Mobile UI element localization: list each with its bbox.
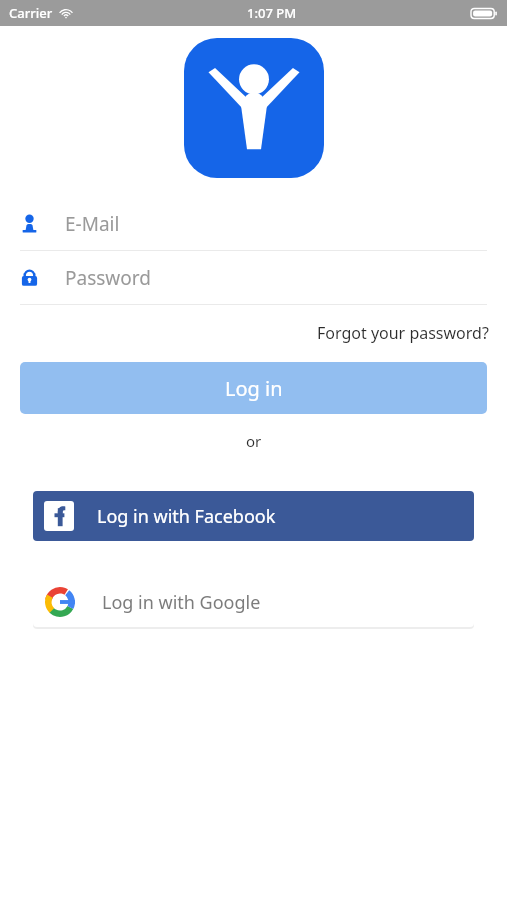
button[interactable]: Log in with Facebook (33, 491, 474, 541)
staticText: Forgot your password? (317, 322, 489, 344)
button[interactable]: Password (0, 251, 507, 304)
staticText: Password (65, 265, 151, 291)
button[interactable]: User (0, 197, 507, 250)
other: User (20, 214, 39, 233)
staticText: 1:07 PM (247, 4, 297, 22)
staticText: or (246, 431, 262, 451)
button[interactable]: Forgot your password? (0, 316, 489, 350)
button[interactable]: Log in with Google (33, 577, 474, 627)
staticText: E-Mail (65, 211, 120, 237)
staticText: Log in with Facebook (97, 504, 276, 529)
staticText: Log in (225, 375, 283, 402)
staticText: Carrier (9, 4, 53, 22)
staticText: Log in with Google (102, 590, 261, 615)
button[interactable]: Log in (20, 362, 487, 414)
other: App logo (184, 38, 324, 178)
other: Password (20, 268, 39, 287)
